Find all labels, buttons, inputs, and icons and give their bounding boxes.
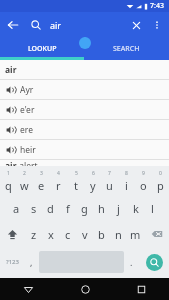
- staticText: f: [66, 201, 70, 216]
- staticText: ,: [30, 256, 33, 268]
- button[interactable]: h: [93, 195, 110, 221]
- button[interactable]: e'er: [0, 100, 169, 119]
- staticText: u: [106, 178, 113, 193]
- button[interactable]: ,: [24, 247, 39, 277]
- button[interactable]: 2: [16, 168, 33, 195]
- button[interactable]: 8: [118, 168, 135, 195]
- button[interactable]: a: [8, 195, 25, 221]
- button[interactable]: 1: [0, 168, 16, 195]
- staticText: 7:43: [150, 1, 164, 11]
- staticText: 3: [40, 170, 43, 177]
- staticText: air: [50, 19, 125, 31]
- staticText: d: [47, 201, 54, 216]
- button[interactable]: heir: [0, 140, 169, 159]
- button[interactable]: s: [25, 195, 42, 221]
- staticText: l: [151, 201, 154, 216]
- button[interactable]: Backspace: [144, 221, 169, 247]
- button[interactable]: 0: [152, 168, 169, 195]
- button[interactable]: 3: [33, 168, 50, 195]
- staticText: j: [117, 201, 120, 216]
- staticText: 0: [159, 170, 162, 177]
- button[interactable]: 9: [135, 168, 152, 195]
- staticText: x: [48, 227, 54, 242]
- button[interactable]: Back: [0, 12, 25, 37]
- button[interactable]: Shift: [0, 221, 25, 247]
- staticText: i: [125, 178, 128, 193]
- button[interactable]: g: [76, 195, 93, 221]
- staticText: n: [115, 227, 122, 242]
- staticText: t: [74, 178, 78, 193]
- button[interactable]: c: [59, 221, 76, 247]
- staticText: 6: [92, 170, 95, 177]
- staticText: e: [38, 178, 45, 193]
- button[interactable]: 5: [67, 168, 84, 195]
- button[interactable]: 7: [101, 168, 118, 195]
- staticText: ?123: [6, 258, 19, 266]
- staticText: Ayr: [20, 84, 34, 96]
- staticText: o: [140, 178, 147, 193]
- staticText: LOOKUP: [28, 44, 57, 54]
- button[interactable]: Ayr: [0, 80, 169, 99]
- staticText: 9: [142, 170, 145, 177]
- button[interactable]: z: [25, 221, 42, 247]
- button[interactable]: air: [0, 160, 169, 166]
- staticText: y: [90, 178, 96, 193]
- staticText: e'er: [20, 104, 35, 116]
- staticText: p: [157, 178, 164, 193]
- button[interactable]: Home: [57, 278, 113, 300]
- staticText: 1: [7, 170, 10, 177]
- staticText: air: [5, 160, 17, 166]
- button[interactable]: LOOKUP: [0, 37, 84, 60]
- button[interactable]: x: [42, 221, 59, 247]
- button[interactable]: b: [93, 221, 110, 247]
- button[interactable]: ere: [0, 120, 169, 139]
- staticText: k: [133, 201, 139, 216]
- staticText: g: [81, 201, 88, 216]
- button[interactable]: l: [144, 195, 161, 221]
- staticText: w: [20, 178, 29, 193]
- button[interactable]: SEARCH: [84, 37, 169, 60]
- staticText: 5: [75, 170, 78, 177]
- staticText: r: [56, 178, 61, 193]
- staticText: b: [98, 227, 105, 242]
- button[interactable]: n: [110, 221, 127, 247]
- button[interactable]: j: [110, 195, 127, 221]
- button[interactable]: air: [0, 60, 169, 79]
- button[interactable]: d: [42, 195, 59, 221]
- button[interactable]: Back: [0, 278, 57, 300]
- button[interactable]: 4: [50, 168, 67, 195]
- staticText: q: [5, 178, 12, 193]
- button[interactable]: f: [59, 195, 76, 221]
- button[interactable]: More options: [147, 15, 167, 35]
- button[interactable]: ?123: [0, 247, 24, 277]
- button[interactable]: k: [127, 195, 144, 221]
- staticText: 8: [125, 170, 128, 177]
- button[interactable]: Search: [146, 254, 163, 271]
- staticText: 7: [108, 170, 111, 177]
- staticText: 4: [57, 170, 60, 177]
- staticText: alert: [17, 160, 38, 166]
- staticText: air: [5, 64, 17, 76]
- staticText: v: [82, 227, 88, 242]
- button[interactable]: .: [124, 247, 139, 277]
- button[interactable]: Clear: [125, 14, 147, 36]
- staticText: .: [130, 256, 133, 268]
- staticText: h: [98, 201, 105, 216]
- staticText: SEARCH: [113, 44, 140, 54]
- staticText: c: [65, 227, 71, 242]
- staticText: a: [13, 201, 20, 216]
- staticText: m: [130, 227, 141, 242]
- button[interactable]: m: [127, 221, 144, 247]
- staticText: 2: [23, 170, 26, 177]
- staticText: heir: [20, 144, 36, 156]
- staticText: s: [31, 201, 37, 216]
- staticText: ere: [20, 124, 33, 136]
- button[interactable]: Search: [25, 14, 47, 36]
- button[interactable]: v: [76, 221, 93, 247]
- button[interactable]: 6: [84, 168, 101, 195]
- button[interactable]: Recent apps: [113, 278, 169, 300]
- staticText: z: [31, 227, 37, 242]
